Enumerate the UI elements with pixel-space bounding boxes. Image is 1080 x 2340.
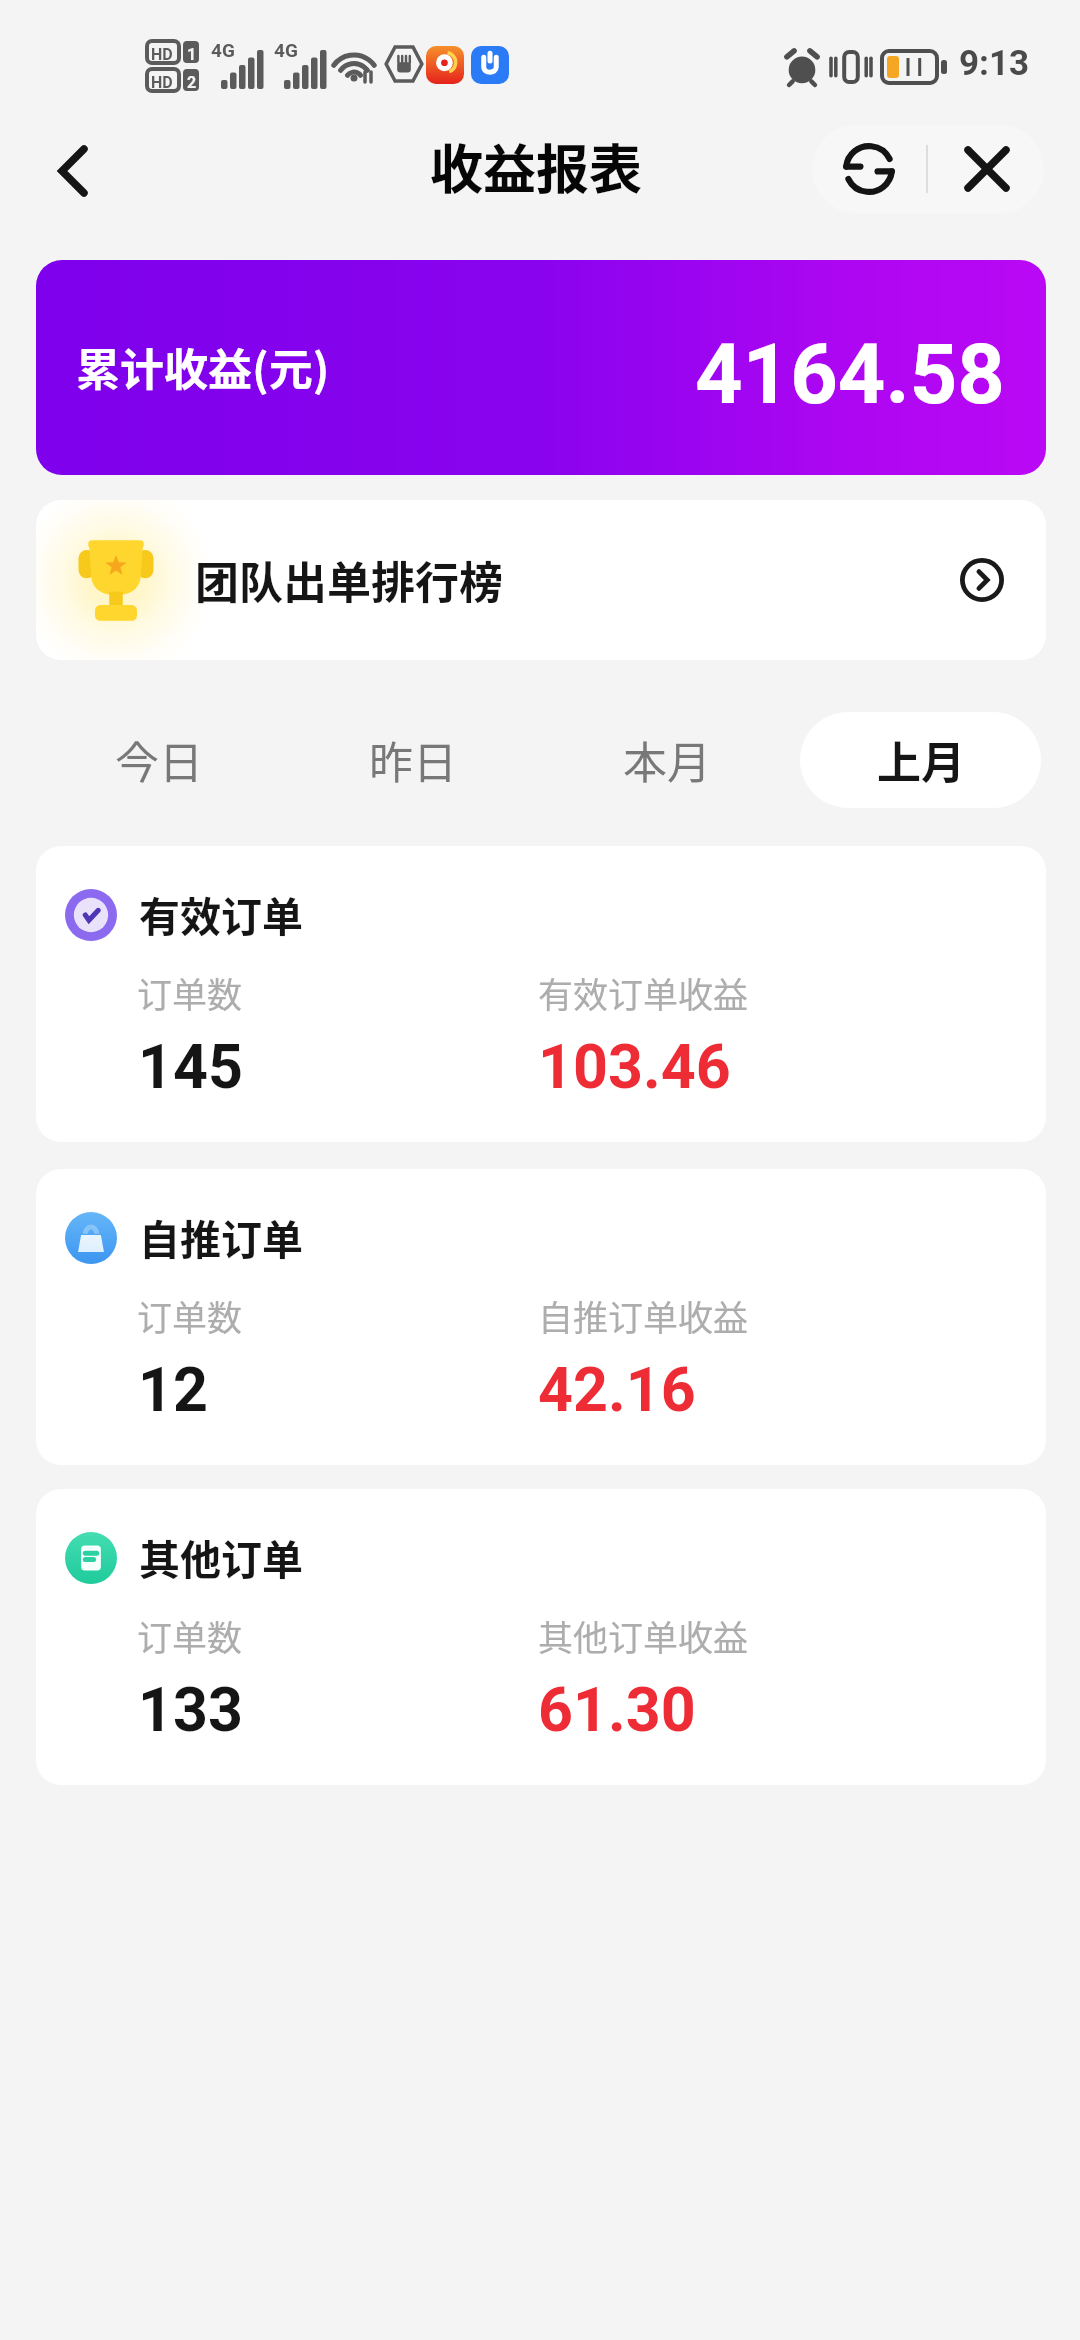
staticText: HD bbox=[151, 45, 173, 64]
staticText: 4164.58 bbox=[695, 326, 1005, 423]
button[interactable]: 本月 bbox=[577, 712, 757, 808]
staticText: 自推订单收益 bbox=[538, 1290, 749, 1341]
staticText: 今日 bbox=[115, 728, 203, 792]
button[interactable]: Close bbox=[930, 125, 1044, 213]
staticText: 订单数 bbox=[137, 1610, 243, 1661]
button[interactable]: 昨日 bbox=[323, 712, 503, 808]
staticText: 其他订单收益 bbox=[538, 1610, 749, 1661]
staticText: 有效订单 bbox=[139, 884, 303, 943]
staticText: 4G bbox=[211, 39, 235, 61]
staticText: 1 bbox=[187, 45, 197, 64]
staticText: 本月 bbox=[623, 728, 711, 792]
staticText: 133 bbox=[138, 1674, 243, 1745]
staticText: 订单数 bbox=[137, 967, 243, 1018]
staticText: 9:13 bbox=[959, 43, 1030, 84]
button[interactable]: 自推订单 bbox=[36, 1169, 1046, 1465]
staticText: 订单数 bbox=[137, 1290, 243, 1341]
staticText: 上月 bbox=[877, 728, 965, 792]
button[interactable]: Refresh bbox=[812, 125, 926, 213]
staticText: 收益报表 bbox=[430, 128, 642, 205]
staticText: 其他订单 bbox=[139, 1527, 303, 1586]
button[interactable]: 有效订单 bbox=[36, 846, 1046, 1142]
staticText: 自推订单 bbox=[139, 1207, 303, 1266]
staticText: 昨日 bbox=[369, 728, 457, 792]
staticText: 有效订单收益 bbox=[538, 967, 749, 1018]
button[interactable]: 上月 bbox=[800, 712, 1041, 808]
staticText: HD bbox=[151, 73, 173, 92]
button[interactable]: 其他订单 bbox=[36, 1489, 1046, 1785]
staticText: 42.16 bbox=[538, 1354, 696, 1425]
button[interactable]: 今日 bbox=[69, 712, 249, 808]
button[interactable]: Back bbox=[25, 123, 121, 219]
staticText: 12 bbox=[138, 1354, 208, 1425]
staticText: 团队出单排行榜 bbox=[195, 548, 503, 612]
button[interactable]: 累计收益(元) bbox=[36, 260, 1046, 475]
staticText: 103.46 bbox=[538, 1031, 731, 1102]
staticText: 61.30 bbox=[538, 1674, 696, 1745]
staticText: 145 bbox=[138, 1031, 243, 1102]
staticText: 累计收益(元) bbox=[76, 335, 330, 399]
button[interactable]: 团队出单排行榜 bbox=[36, 500, 1046, 660]
staticText: 2 bbox=[187, 73, 197, 92]
staticText: 4G bbox=[274, 39, 298, 61]
